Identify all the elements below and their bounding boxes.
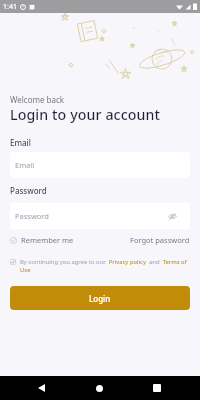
staticText: Remember me <box>21 235 74 245</box>
button[interactable]: Home <box>88 377 110 399</box>
button[interactable]: Email <box>10 152 190 178</box>
button[interactable]: Password <box>10 203 190 229</box>
staticText: Password <box>15 211 49 221</box>
button[interactable]: Recent apps <box>146 377 168 399</box>
button[interactable]: Login <box>10 286 190 310</box>
button[interactable]: Show password <box>168 212 177 221</box>
staticText: Forgot password <box>130 235 190 245</box>
staticText: Login <box>89 293 111 304</box>
button[interactable]: Forgot password <box>130 234 190 246</box>
staticText: Use <box>20 266 31 274</box>
staticText: Login to your account <box>10 105 161 124</box>
staticText: Email <box>10 137 31 148</box>
staticText: By continuing you agree to our Privacy p… <box>20 258 187 266</box>
staticText: Email <box>15 160 35 170</box>
staticText: Password <box>10 185 47 196</box>
button[interactable]: By continuing you agree to our Privacy p… <box>10 258 187 274</box>
staticText: Welcome back <box>10 94 65 105</box>
button[interactable]: Back <box>30 377 52 399</box>
staticText: 1:41 <box>3 2 17 12</box>
button[interactable]: Remember me <box>10 234 74 246</box>
